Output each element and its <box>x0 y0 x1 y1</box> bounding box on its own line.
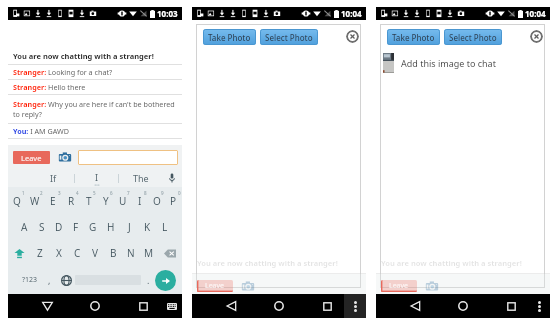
button[interactable]: V <box>86 240 104 266</box>
button[interactable]: D <box>50 214 67 240</box>
button[interactable]: If <box>47 171 60 185</box>
button[interactable]: Shift <box>8 240 30 266</box>
button[interactable] <box>78 150 178 165</box>
staticText: 4 <box>76 190 79 196</box>
staticText: I <box>138 194 142 208</box>
staticText: J <box>128 220 131 234</box>
button[interactable]: Keyboard <box>161 294 183 318</box>
button[interactable]: . <box>141 266 155 294</box>
button[interactable]: L <box>156 214 174 240</box>
staticText: Q <box>13 194 21 208</box>
button[interactable]: N <box>122 240 140 266</box>
button[interactable]: I <box>92 170 102 184</box>
button[interactable]: Select Photo <box>444 29 502 45</box>
staticText: 9 <box>161 190 164 196</box>
button[interactable]: C <box>68 240 86 266</box>
staticText: . <box>147 274 150 286</box>
staticText: X <box>56 246 62 260</box>
button[interactable]: B <box>104 240 122 266</box>
button[interactable]: Leave <box>13 151 50 164</box>
button[interactable]: I <box>75 169 118 187</box>
staticText: Stranger: Looking for a chat? <box>13 67 113 77</box>
staticText: The <box>133 172 149 184</box>
button[interactable]: The <box>130 171 152 185</box>
button[interactable]: You: I AM GAWD <box>8 124 182 138</box>
button[interactable]: Stranger: Hello there <box>8 80 182 94</box>
button[interactable]: T <box>80 187 97 214</box>
button[interactable]: Q <box>8 187 26 214</box>
button[interactable]: Z <box>30 240 49 266</box>
staticText: W <box>30 194 40 208</box>
button[interactable]: S <box>33 214 50 240</box>
button[interactable]: E <box>44 187 62 214</box>
staticText: ?123 <box>22 275 38 285</box>
staticText: Leave <box>21 153 42 163</box>
button[interactable]: Select Photo <box>260 29 318 45</box>
staticText: Select Photo <box>265 32 313 43</box>
button[interactable]: I <box>131 187 148 214</box>
button[interactable]: Back <box>220 294 242 318</box>
button[interactable]: Take Photo <box>203 29 256 45</box>
staticText: R <box>68 194 75 208</box>
button[interactable]: A <box>16 214 33 240</box>
button[interactable]: Change language <box>57 266 75 294</box>
button[interactable]: P <box>165 187 182 214</box>
staticText: P <box>170 194 177 208</box>
button[interactable]: F <box>67 214 84 240</box>
staticText: 7 <box>127 190 130 196</box>
button[interactable]: X <box>49 240 68 266</box>
staticText: I <box>95 171 99 183</box>
button[interactable]: Y <box>97 187 114 214</box>
button[interactable]: Recents <box>316 294 338 318</box>
button[interactable]: M <box>140 240 158 266</box>
staticText: Y <box>103 194 109 208</box>
button[interactable]: H <box>102 214 120 240</box>
button[interactable]: Send <box>155 270 176 291</box>
button[interactable]: More options <box>528 294 550 318</box>
button[interactable]: Close <box>530 30 543 43</box>
button[interactable]: The <box>119 169 162 187</box>
button[interactable]: , <box>41 266 57 294</box>
staticText: 5 <box>93 190 96 196</box>
button[interactable]: Back <box>404 294 426 318</box>
button[interactable]: Voice input <box>162 169 182 187</box>
button[interactable]: Stranger: Why you are here if can't be b… <box>8 95 182 123</box>
button[interactable]: R <box>62 187 80 214</box>
staticText: 2 <box>40 190 43 196</box>
button[interactable]: More options <box>344 294 366 318</box>
button[interactable]: ?123 <box>18 266 41 294</box>
button[interactable]: Home <box>452 294 474 318</box>
button[interactable]: K <box>138 214 156 240</box>
button[interactable]: Recents <box>500 294 522 318</box>
button[interactable]: Stranger: Looking for a chat? <box>8 65 182 79</box>
button[interactable]: If <box>32 169 74 187</box>
staticText: 10:03 <box>157 8 178 19</box>
staticText: 6 <box>110 190 113 196</box>
button[interactable]: J <box>120 214 138 240</box>
staticText: 8 <box>144 190 147 196</box>
staticText: O <box>153 194 161 208</box>
button[interactable]: W <box>26 187 44 214</box>
staticText: Take Photo <box>392 32 435 43</box>
button[interactable]: Home <box>268 294 290 318</box>
staticText: Stranger: Why you are here if can't be b… <box>13 99 180 119</box>
button[interactable]: G <box>84 214 102 240</box>
button[interactable]: Home <box>84 294 106 318</box>
button[interactable]: Add this image to chat <box>380 52 545 74</box>
staticText: S <box>39 220 45 234</box>
staticText: N <box>127 246 135 260</box>
button[interactable]: Close <box>346 30 359 43</box>
button[interactable]: U <box>114 187 131 214</box>
button[interactable]: O <box>148 187 165 214</box>
staticText: B <box>110 246 117 260</box>
staticText: Z <box>37 246 43 260</box>
button[interactable]: Backspace <box>158 240 182 266</box>
button[interactable]: Camera <box>58 150 72 164</box>
staticText: Stranger: Hello there <box>13 82 86 92</box>
button[interactable]: Recents <box>132 294 154 318</box>
button[interactable]: Back <box>36 294 58 318</box>
button[interactable]: Take Photo <box>387 29 440 45</box>
staticText: You: I AM GAWD <box>13 126 69 136</box>
staticText: L <box>162 220 168 234</box>
